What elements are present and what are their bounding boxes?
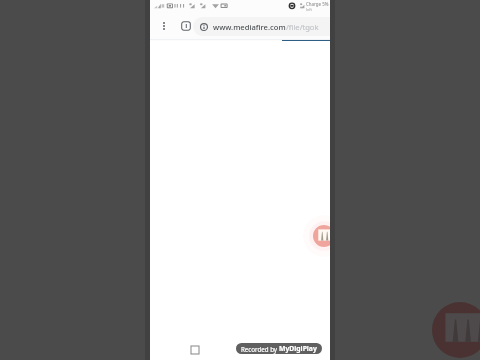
button[interactable]: More options [150, 13, 178, 39]
button[interactable]: Tabs [178, 13, 193, 39]
staticText: left [306, 7, 312, 12]
button[interactable]: Recorded by [236, 343, 322, 354]
staticText: /file/tgok [286, 22, 319, 32]
button[interactable]: www.mediafire.com [193, 17, 330, 36]
staticText: MyDigiPlay [279, 344, 317, 353]
button[interactable]: Overview [187, 342, 203, 358]
staticText: Recorded by [241, 345, 279, 353]
staticText: Charge 5% [306, 1, 329, 7]
staticText: www.mediafire.com [213, 22, 286, 32]
